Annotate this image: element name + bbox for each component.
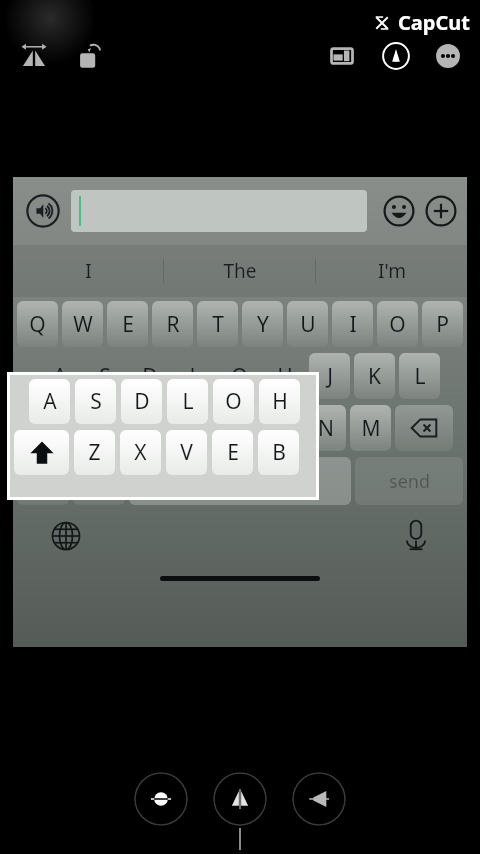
staticText: B	[272, 438, 286, 467]
staticText: H	[272, 387, 288, 416]
staticText: W	[73, 310, 93, 339]
button[interactable]: Voice	[23, 191, 63, 231]
staticText: I	[349, 310, 357, 339]
staticText: T	[212, 310, 224, 339]
staticText: Y	[257, 310, 269, 339]
staticText: H	[277, 362, 293, 391]
button[interactable]: Emoji keyboard	[73, 457, 125, 505]
button[interactable]: S	[84, 353, 125, 399]
button[interactable]: I	[13, 245, 163, 297]
staticText: E	[230, 414, 242, 443]
button[interactable]: send	[355, 457, 463, 505]
button[interactable]: Markup	[376, 36, 416, 76]
staticText: E	[122, 310, 134, 339]
button[interactable]: Mirror horizontal	[213, 772, 267, 826]
button[interactable]: Shift	[14, 430, 69, 475]
button[interactable]: O	[213, 379, 254, 424]
staticText: O	[389, 310, 406, 339]
button[interactable]: Mirror	[14, 36, 54, 76]
staticText: The	[223, 258, 257, 284]
button[interactable]: O	[377, 301, 418, 347]
button[interactable]: E	[107, 301, 148, 347]
staticText: 123	[28, 470, 58, 493]
button[interactable]: R	[152, 301, 193, 347]
button[interactable]: I	[332, 301, 373, 347]
staticText: CapCut	[398, 9, 470, 36]
button[interactable]: Layout	[322, 36, 362, 76]
staticText: S	[99, 362, 111, 391]
staticText: D	[134, 387, 150, 416]
staticText: R	[166, 310, 180, 339]
button[interactable]: H	[264, 353, 305, 399]
button[interactable]: Q	[17, 301, 58, 347]
staticText: M	[361, 414, 381, 443]
button[interactable]: D	[121, 379, 162, 424]
staticText: J	[327, 362, 333, 391]
staticText: V	[180, 438, 193, 467]
button[interactable]: Rotate	[68, 36, 108, 76]
staticText: L	[414, 362, 426, 391]
button[interactable]: I'm	[316, 245, 467, 297]
button[interactable]: X	[125, 405, 166, 451]
staticText: L	[189, 362, 201, 391]
staticText: O	[231, 362, 248, 391]
button[interactable]: D	[129, 353, 170, 399]
button[interactable]: O	[219, 353, 260, 399]
button[interactable]: N	[305, 405, 346, 451]
button[interactable]: Y	[242, 301, 283, 347]
button[interactable]: B	[260, 405, 301, 451]
button[interactable]: U	[287, 301, 328, 347]
button[interactable]: L	[399, 353, 440, 399]
button[interactable]: Emoji	[379, 191, 419, 231]
button[interactable]: Flip side	[292, 772, 346, 826]
staticText: Q	[29, 310, 46, 339]
button[interactable]: S	[75, 379, 116, 424]
button[interactable]: L	[174, 353, 215, 399]
staticText: I'm	[378, 258, 406, 284]
button[interactable]: P	[422, 301, 463, 347]
button[interactable]: Change language	[45, 515, 87, 557]
button[interactable]	[71, 190, 367, 232]
button[interactable]: The	[164, 245, 315, 297]
button[interactable]: Backspace	[395, 405, 453, 451]
button[interactable]: Flip vertical	[134, 772, 188, 826]
staticText: E	[227, 438, 239, 467]
button[interactable]: M	[350, 405, 391, 451]
staticText: K	[368, 362, 381, 391]
button[interactable]: T	[197, 301, 238, 347]
staticText: O	[225, 387, 242, 416]
staticText: Z	[94, 414, 107, 443]
staticText: V	[184, 414, 197, 443]
button[interactable]: Z	[74, 430, 115, 475]
staticText: L	[182, 387, 194, 416]
button[interactable]: K	[354, 353, 395, 399]
button[interactable]: H	[259, 379, 300, 424]
button[interactable]: space	[129, 457, 351, 505]
staticText: A	[53, 362, 67, 391]
button[interactable]: J	[309, 353, 350, 399]
button[interactable]: W	[62, 301, 103, 347]
staticText: A	[43, 387, 57, 416]
staticText: D	[142, 362, 158, 391]
staticText: N	[318, 414, 334, 443]
staticText: B	[274, 414, 288, 443]
button[interactable]: V	[170, 405, 211, 451]
button[interactable]: A	[39, 353, 80, 399]
staticText: U	[300, 310, 316, 339]
button[interactable]: E	[212, 430, 253, 475]
button[interactable]: X	[120, 430, 161, 475]
button[interactable]: Add attachment	[421, 191, 461, 231]
button[interactable]: V	[166, 430, 207, 475]
staticText: I	[85, 258, 92, 284]
button[interactable]: E	[215, 405, 256, 451]
button[interactable]: B	[258, 430, 299, 475]
staticText: X	[134, 438, 147, 467]
button[interactable]: Dictate	[395, 515, 437, 557]
button[interactable]: More options	[428, 36, 468, 76]
button[interactable]: A	[29, 379, 70, 424]
staticText: Z	[88, 438, 101, 467]
staticText: P	[436, 310, 449, 339]
button[interactable]: 123	[17, 457, 69, 505]
button[interactable]: L	[167, 379, 208, 424]
button[interactable]: Z	[80, 405, 121, 451]
